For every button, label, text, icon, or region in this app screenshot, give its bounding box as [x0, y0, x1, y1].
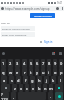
staticText: .	[50, 94, 52, 99]
staticText: c	[26, 86, 28, 91]
staticText: 2	[9, 61, 12, 66]
staticText: Enter your password	[2, 33, 27, 36]
button[interactable]: a	[1, 76, 7, 84]
staticText: b	[38, 86, 41, 91]
button[interactable]: o	[53, 68, 57, 76]
staticText: ,	[13, 94, 15, 99]
button[interactable]: 3	[15, 59, 20, 68]
button[interactable]: l	[58, 76, 63, 84]
button[interactable]: 4	[22, 59, 27, 68]
staticText: 9:41	[57, 1, 63, 5]
button[interactable]	[1, 84, 10, 92]
staticText: q	[2, 70, 5, 75]
button[interactable]: Reload	[56, 7, 59, 10]
button[interactable]: h	[37, 76, 42, 84]
button[interactable]: .	[48, 92, 53, 100]
button[interactable]: Clipboard	[52, 52, 55, 55]
button[interactable]: w	[8, 68, 13, 76]
button[interactable]: q	[1, 68, 6, 76]
staticText: i	[48, 70, 50, 75]
button[interactable]: Site info	[1, 7, 4, 10]
button[interactable]: 9	[53, 59, 57, 68]
button[interactable]: i	[47, 68, 51, 76]
staticText: o	[54, 70, 57, 75]
button[interactable]: g	[30, 76, 35, 84]
staticText: x	[20, 86, 23, 91]
button[interactable]: v	[31, 84, 35, 92]
staticText: t	[30, 70, 32, 75]
button[interactable]: 1	[1, 59, 6, 68]
staticText: Sign in	[44, 40, 53, 44]
button[interactable]: y	[35, 68, 39, 76]
button[interactable]: z	[12, 84, 17, 92]
button[interactable]: Enter your password	[1, 32, 35, 37]
staticText: Sign up	[1, 21, 10, 24]
staticText: k	[52, 78, 55, 83]
button[interactable]: t	[29, 68, 33, 76]
staticText: 4	[23, 61, 26, 66]
button[interactable]: b	[37, 84, 41, 92]
staticText: f	[25, 78, 27, 83]
button[interactable]: n	[43, 84, 47, 92]
staticText: v	[32, 86, 35, 91]
staticText: 1	[2, 61, 5, 66]
button[interactable]: Email or phone number	[1, 26, 35, 31]
button[interactable]	[55, 84, 63, 92]
button[interactable]: f	[23, 76, 28, 84]
button[interactable]: j	[44, 76, 49, 84]
staticText: 9	[54, 61, 57, 66]
staticText: https://www.example.com/signup	[5, 7, 50, 11]
staticText: z	[14, 86, 16, 91]
staticText: n	[44, 86, 47, 91]
button[interactable]: 6	[35, 59, 39, 68]
button[interactable]: Create account	[30, 13, 55, 18]
staticText: 5	[30, 61, 33, 66]
button[interactable]: Google	[2, 52, 5, 55]
staticText: p	[60, 70, 63, 75]
staticText: 0	[60, 61, 63, 66]
button[interactable]: m	[49, 84, 53, 92]
button[interactable]: ?123	[1, 92, 9, 100]
button[interactable]: k	[51, 76, 56, 84]
staticText: a	[3, 78, 6, 83]
staticText: g	[31, 78, 34, 83]
button[interactable]: d	[16, 76, 21, 84]
staticText: ?123	[1, 92, 9, 100]
staticText: m	[49, 86, 53, 91]
button[interactable]: s	[9, 76, 14, 84]
button[interactable]: u	[41, 68, 45, 76]
staticText: 3	[16, 61, 19, 66]
staticText: l	[60, 78, 62, 83]
button[interactable]: x	[19, 84, 23, 92]
button[interactable]: 0	[59, 59, 63, 68]
button[interactable]: 8	[47, 59, 51, 68]
staticText: Email or phone number	[2, 27, 30, 30]
button[interactable]: r	[22, 68, 27, 76]
staticText: 6	[36, 61, 39, 66]
button[interactable]: c	[25, 84, 29, 92]
button[interactable]: p	[59, 68, 63, 76]
button[interactable]: Settings	[59, 52, 62, 55]
staticText: s	[11, 78, 13, 83]
button[interactable]: 7	[41, 59, 45, 68]
button[interactable]: Sign in	[40, 40, 53, 44]
button[interactable]: 2	[8, 59, 13, 68]
staticText: 8	[48, 61, 51, 66]
staticText: Create account	[34, 14, 52, 17]
staticText: w	[9, 70, 13, 75]
staticText: y	[36, 70, 39, 75]
staticText: 7	[42, 61, 45, 66]
staticText: h	[38, 78, 41, 83]
button[interactable]: e	[15, 68, 20, 76]
staticText: j	[46, 78, 48, 83]
staticText: u	[42, 70, 45, 75]
button[interactable]: ,	[11, 92, 16, 100]
staticText: r	[24, 70, 26, 75]
staticText: d	[17, 78, 20, 83]
button[interactable]: 5	[29, 59, 33, 68]
staticText: e	[16, 70, 19, 75]
button[interactable]	[55, 92, 63, 100]
